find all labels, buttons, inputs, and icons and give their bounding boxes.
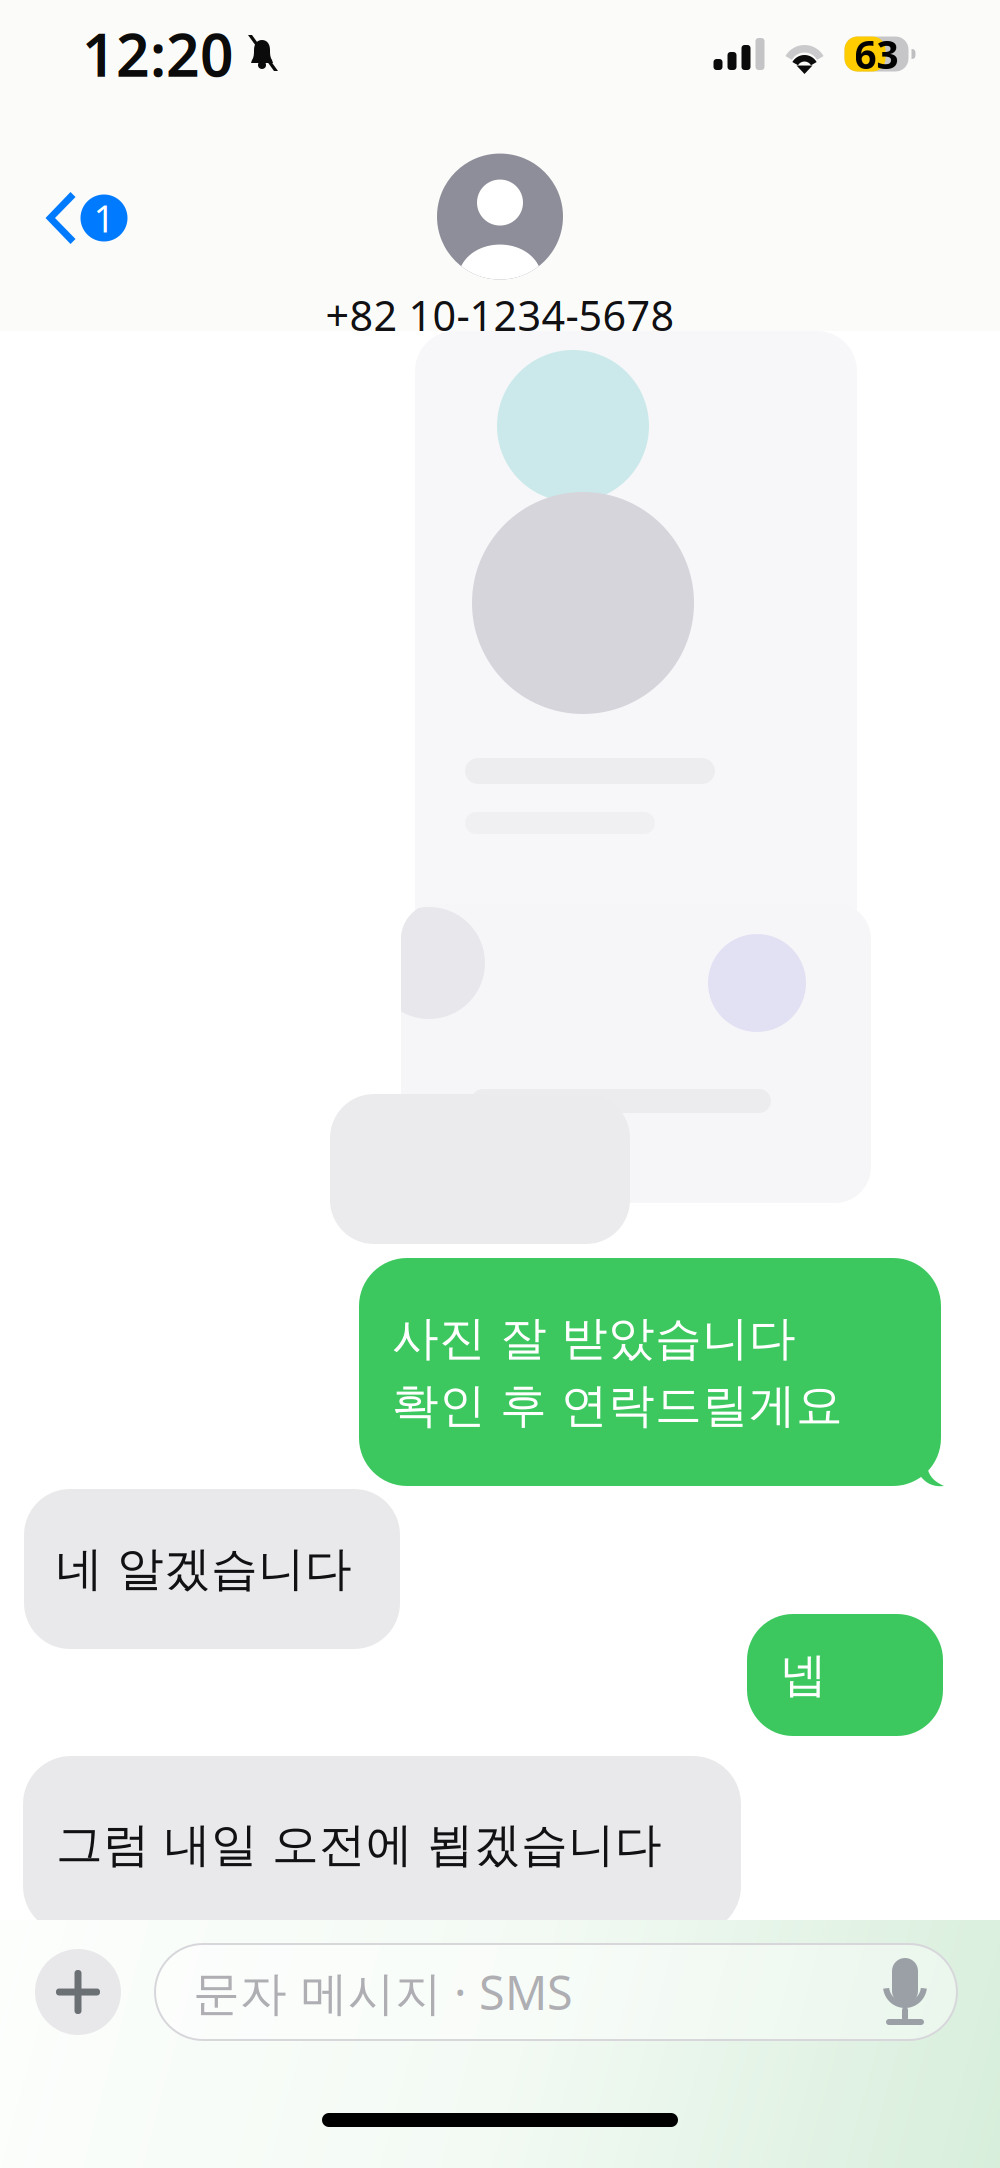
button[interactable]: Text message, SMS: [155, 1944, 957, 2040]
staticText: +82 10-1234-5678: [325, 288, 674, 342]
staticText: 넵: [780, 1646, 827, 1704]
staticText: 63: [854, 28, 898, 80]
staticText: 확인 후 연락드릴게요: [392, 1377, 843, 1434]
button[interactable]: Add attachment: [35, 1949, 121, 2035]
staticText: 사진 잘 받았습니다: [392, 1310, 796, 1367]
staticText: 12:20: [82, 15, 234, 93]
button[interactable]: Contact details: [319, 148, 680, 348]
staticText: 네 알겠습니다: [56, 1540, 352, 1598]
staticText: 1: [93, 193, 114, 243]
button[interactable]: Back, 1 unread: [20, 177, 143, 259]
staticText: 그럼 내일 오전에 뵙겠습니다: [56, 1816, 662, 1874]
staticText: 문자 메시지 · SMS: [193, 1961, 573, 2023]
